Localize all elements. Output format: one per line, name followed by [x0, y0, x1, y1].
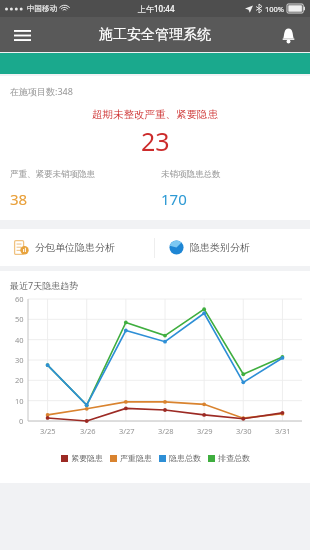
- staticText: 170: [161, 189, 187, 209]
- staticText: 38: [10, 189, 28, 209]
- staticText: 分包单位隐患分析: [35, 241, 115, 254]
- staticText: 40: [15, 335, 24, 345]
- staticText: 排查总数: [218, 453, 250, 463]
- staticText: 最近7天隐患趋势: [10, 279, 79, 291]
- button[interactable]: Menu: [6, 19, 38, 51]
- button[interactable]: 隐患类别分析: [155, 229, 310, 266]
- staticText: 隐患类别分析: [190, 241, 250, 254]
- staticText: 超期未整改严重、紧要隐患: [92, 108, 218, 121]
- staticText: 3/27: [119, 426, 135, 436]
- staticText: 严重、紧要未销项隐患: [10, 169, 95, 180]
- staticText: 3/31: [275, 426, 291, 436]
- staticText: 20: [15, 375, 24, 385]
- staticText: 10: [15, 396, 24, 406]
- staticText: 严重隐患: [120, 453, 152, 463]
- staticText: 3/26: [80, 426, 96, 436]
- staticText: 3/30: [236, 426, 252, 436]
- staticText: 紧要隐患: [71, 453, 103, 463]
- staticText: 23: [141, 124, 170, 158]
- staticText: 上午10:44: [138, 3, 175, 14]
- staticText: 在施项目数:348: [10, 85, 73, 97]
- staticText: 30: [15, 355, 24, 365]
- staticText: 中国移动: [27, 4, 57, 13]
- staticText: 隐患总数: [169, 453, 201, 463]
- staticText: 3/25: [40, 426, 56, 436]
- button[interactable]: 分包单位隐患分析: [0, 229, 154, 266]
- button[interactable]: Notifications: [273, 20, 303, 50]
- staticText: 施工安全管理系统: [99, 26, 211, 44]
- staticText: 100%: [265, 4, 285, 14]
- staticText: 50: [15, 314, 24, 324]
- staticText: 3/28: [158, 426, 174, 436]
- staticText: 未销项隐患总数: [161, 169, 221, 180]
- staticText: 60: [15, 294, 24, 304]
- staticText: 3/29: [197, 426, 213, 436]
- staticText: 0: [19, 416, 24, 426]
